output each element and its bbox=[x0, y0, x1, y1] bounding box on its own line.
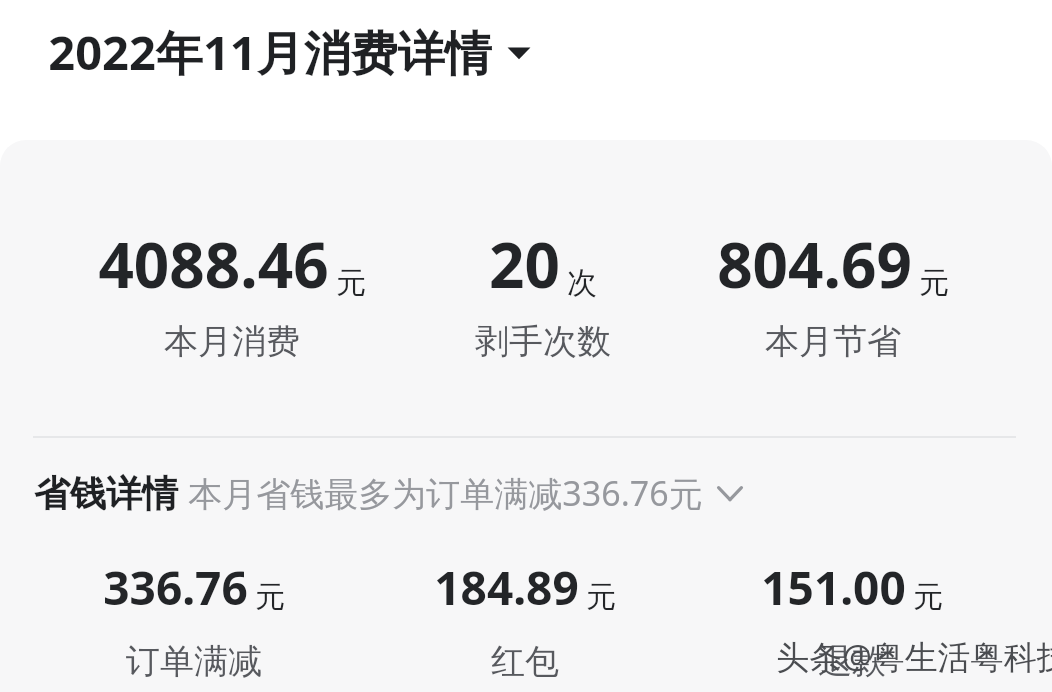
staticText: 退款 bbox=[818, 640, 886, 683]
staticText: 元 bbox=[913, 578, 943, 616]
button[interactable]: 20 bbox=[243, 222, 843, 306]
staticText: 省钱详情 bbox=[34, 471, 178, 516]
staticText: 184.89 bbox=[434, 556, 579, 619]
staticText: 元 bbox=[336, 264, 366, 302]
button[interactable]: 336.76 bbox=[0, 556, 494, 619]
other: Watermark bbox=[776, 634, 1052, 679]
staticText: 次 bbox=[567, 264, 597, 302]
staticText: 元 bbox=[586, 578, 616, 616]
staticText: 本月消费 bbox=[164, 320, 300, 363]
staticText: 804.69 bbox=[717, 222, 912, 306]
button[interactable]: 省钱详情 bbox=[30, 466, 747, 520]
staticText: 20 bbox=[489, 222, 560, 306]
staticText: 本月省钱最多为订单满减336.76元 bbox=[188, 470, 703, 516]
staticText: 本月节省 bbox=[765, 320, 901, 363]
staticText: 元 bbox=[255, 578, 285, 616]
button[interactable]: 804.69 bbox=[533, 222, 1052, 306]
staticText: 4088.46 bbox=[98, 222, 329, 306]
staticText: 元 bbox=[919, 264, 949, 302]
staticText: 151.00 bbox=[761, 556, 906, 619]
staticText: 订单满减 bbox=[126, 640, 262, 683]
staticText: 红包 bbox=[491, 640, 559, 683]
button[interactable]: 4088.46 bbox=[0, 222, 532, 306]
staticText: 336.76 bbox=[103, 556, 248, 619]
button[interactable]: 184.89 bbox=[225, 556, 825, 619]
staticText: 2022年11月消费详情 bbox=[48, 20, 492, 84]
staticText: 头条@粤生活粤科技 bbox=[776, 634, 1052, 679]
staticText: 剥手次数 bbox=[475, 320, 611, 363]
button[interactable]: 2022年11月消费详情 bbox=[44, 14, 536, 90]
button[interactable]: 151.00 bbox=[552, 556, 1052, 619]
